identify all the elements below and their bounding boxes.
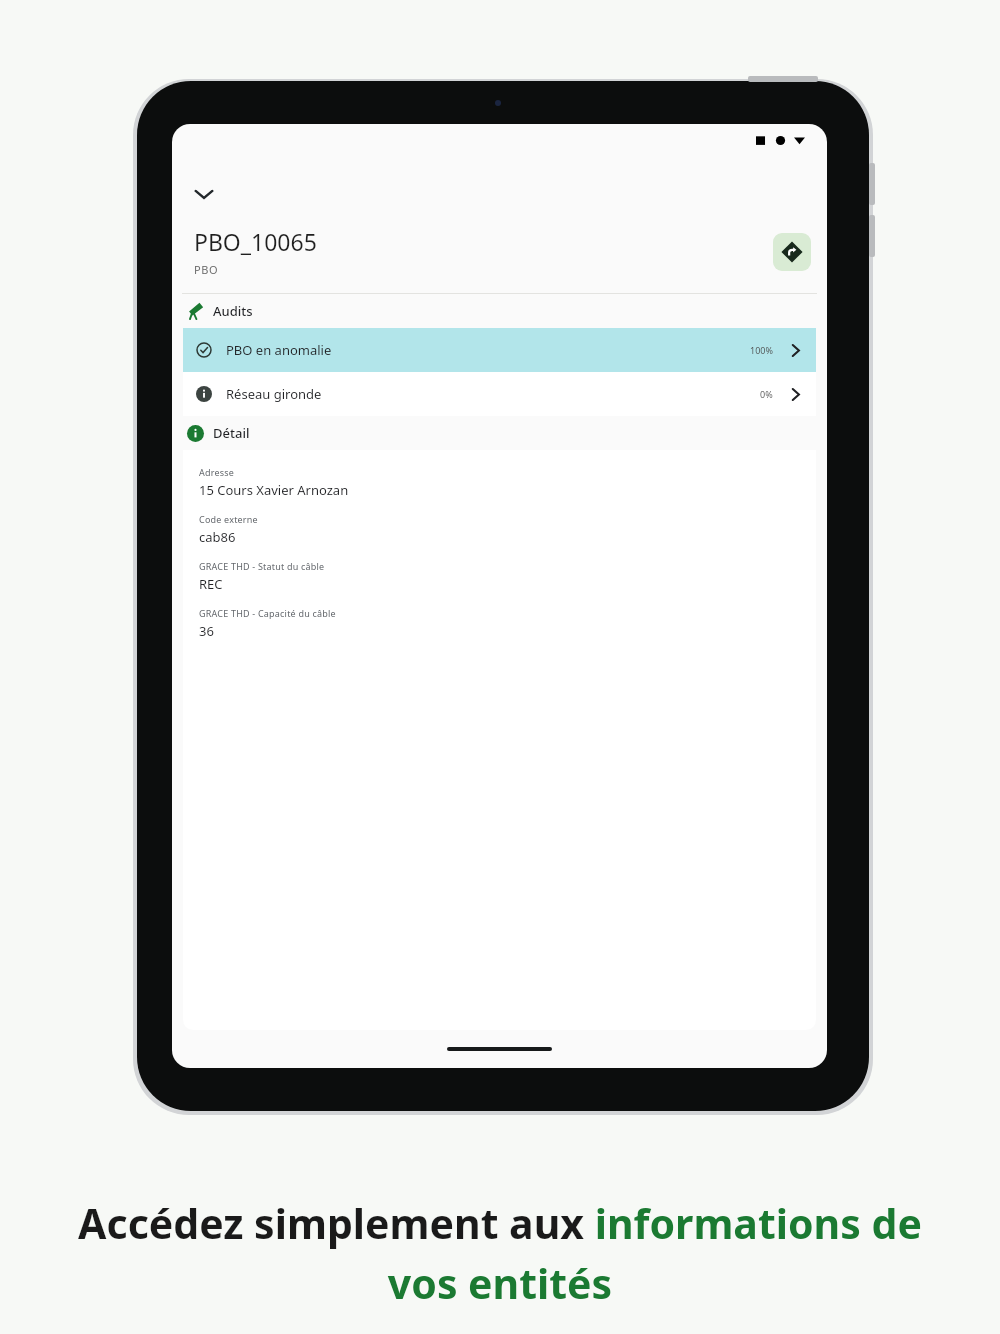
staticText: PBO_10065 bbox=[194, 226, 317, 257]
staticText: 100% bbox=[750, 344, 773, 356]
button[interactable]: PBO en anomalie bbox=[183, 328, 816, 372]
staticText: 15 Cours Xavier Arnozan bbox=[199, 481, 349, 499]
staticText: Adresse bbox=[199, 466, 234, 478]
staticText: Audits bbox=[213, 302, 253, 320]
staticText: 36 bbox=[199, 622, 214, 640]
staticText: Code externe bbox=[199, 513, 258, 525]
staticText: Détail bbox=[213, 424, 250, 442]
staticText: Accédez simplement aux informations de v… bbox=[70, 1195, 930, 1311]
staticText: GRACE THD - Capacité du câble bbox=[199, 607, 336, 619]
button[interactable]: Réduire bbox=[180, 170, 228, 218]
staticText: GRACE THD - Statut du câble bbox=[199, 560, 325, 572]
staticText: REC bbox=[199, 575, 223, 593]
staticText: 0% bbox=[760, 388, 773, 400]
button[interactable]: Itinéraire bbox=[773, 233, 811, 271]
staticText: Réseau gironde bbox=[226, 385, 760, 403]
staticText: cab86 bbox=[199, 528, 236, 546]
staticText: PBO bbox=[194, 262, 219, 277]
button[interactable]: Réseau gironde bbox=[183, 372, 816, 416]
staticText: PBO en anomalie bbox=[226, 341, 750, 359]
